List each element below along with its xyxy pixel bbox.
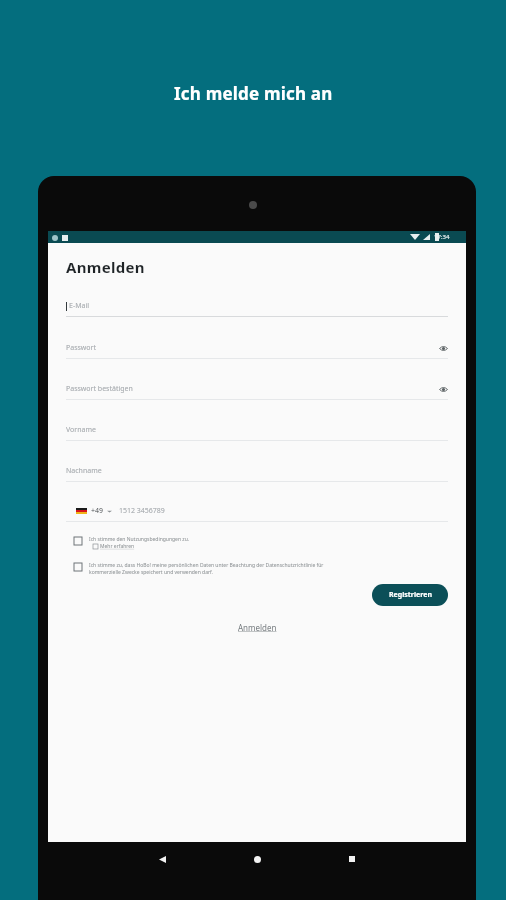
staticText: Mehr erfahren (100, 543, 135, 550)
staticText: E-Mail (69, 301, 90, 311)
button[interactable]: Registrieren (372, 584, 448, 606)
staticText: 1512 3456789 (119, 506, 165, 516)
button[interactable]: Passwort anzeigen (438, 384, 448, 394)
staticText: Anmelden (66, 257, 145, 277)
button[interactable]: Startseite (249, 851, 265, 867)
button[interactable]: Ich stimme zu, dass HoBo! meine persönli… (66, 562, 448, 576)
button[interactable]: Vorname (66, 423, 448, 441)
staticText: +49 (91, 506, 104, 516)
staticText: Anmelden (238, 622, 277, 633)
button[interactable]: Anmelden (234, 618, 281, 637)
staticText: Ich stimme den Nutzungsbedingungen zu. (89, 536, 190, 543)
button[interactable]: +49 (66, 504, 448, 522)
staticText: kommerzielle Zwecke speichert und verwen… (89, 569, 213, 576)
staticText: Passwort bestätigen (66, 384, 133, 394)
button[interactable]: Passwort anzeigen (438, 343, 448, 353)
staticText: Nachname (66, 466, 102, 476)
button[interactable]: Passwort (66, 341, 448, 359)
button[interactable]: Mehr erfahren (93, 543, 135, 550)
button[interactable]: Zurück (154, 851, 170, 867)
staticText: Ich melde mich an (174, 82, 333, 105)
staticText: Vorname (66, 425, 96, 435)
button[interactable]: Ich stimme den Nutzungsbedingungen zu. (66, 536, 448, 550)
button[interactable]: Nachname (66, 464, 448, 482)
button[interactable]: Übersicht (344, 851, 360, 867)
staticText: 17:34 (434, 233, 450, 241)
staticText: Registrieren (389, 590, 432, 600)
button[interactable]: Passwort bestätigen (66, 382, 448, 400)
staticText: Ich stimme zu, dass HoBo! meine persönli… (89, 562, 324, 569)
button[interactable]: E-Mail (66, 299, 448, 317)
staticText: Passwort (66, 343, 97, 353)
